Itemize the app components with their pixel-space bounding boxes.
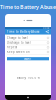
staticText: Repeat: [7, 45, 17, 49]
button[interactable]: Share: [45, 30, 51, 33]
staticText: START: [24, 57, 32, 60]
button[interactable]: Discharge to level: [5, 40, 51, 45]
staticText: Time to Battery Abuse: [7, 30, 40, 33]
button[interactable]: Keep screen on: [5, 50, 51, 54]
staticText: Charge to level: [7, 36, 28, 40]
button[interactable]: Repeat: [5, 45, 51, 50]
staticText: Keep screen on: [7, 50, 30, 54]
button[interactable]: START: [7, 57, 49, 60]
staticText: Battery: 100.0 %: [16, 76, 39, 79]
staticText: Discharge to level: [7, 41, 31, 44]
button[interactable]: Charge to level: [5, 36, 51, 40]
staticText: Time to Battery Abuse: [0, 3, 56, 11]
